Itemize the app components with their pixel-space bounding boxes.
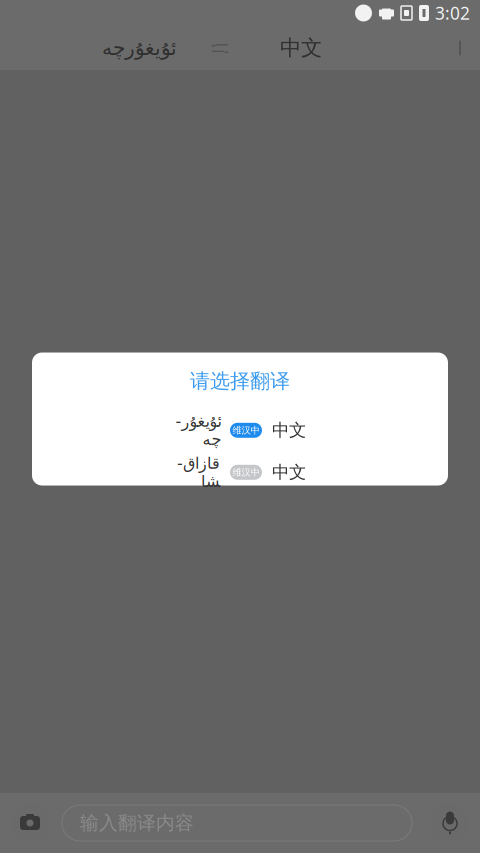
button[interactable]: ئۇيغۇرچە [84,26,194,70]
staticText: ئۇيغۇرچە [175,412,221,448]
staticText: قازاقشا [176,454,219,490]
button[interactable]: Voice input [430,803,470,843]
staticText: ئۇيغۇرچە [101,37,176,59]
button[interactable]: 中文 [246,26,356,70]
button[interactable]: 输入翻译内容 [62,805,412,841]
button[interactable]: Camera translate [10,803,50,843]
staticText: 中文 [280,35,322,61]
staticText: 3:02 [435,1,470,24]
staticText: 请选择翻译 [190,369,290,393]
staticText: 维汉中 [232,425,259,436]
button[interactable]: قازاقشا [32,459,448,485]
staticText: 中文 [272,420,306,441]
staticText: 输入翻译内容 [80,811,194,834]
staticText: 中文 [272,462,306,483]
button[interactable]: ئۇيغۇرچە [32,417,448,443]
staticText: 维汉中 [232,467,259,478]
